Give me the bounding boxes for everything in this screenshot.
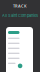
staticText: All Saint Companies — [2, 13, 38, 18]
staticText: TRACK — [13, 3, 27, 9]
